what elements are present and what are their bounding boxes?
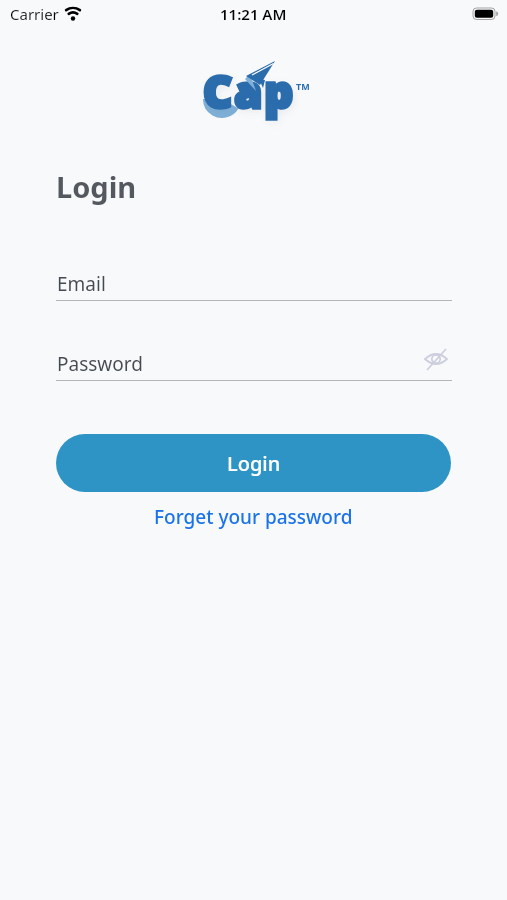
staticText: Forget your password <box>154 504 353 530</box>
staticText: Email <box>57 271 106 297</box>
button[interactable] <box>424 346 450 372</box>
staticText: TM <box>296 80 310 92</box>
staticText: Login <box>56 167 137 206</box>
staticText: Password <box>57 351 143 377</box>
button[interactable]: Email <box>56 270 452 301</box>
staticText: Cap <box>203 60 296 121</box>
staticText: Cap <box>203 60 296 121</box>
staticText: 11:21 AM <box>220 4 287 24</box>
button[interactable]: Forget your password <box>154 504 353 530</box>
staticText: Login <box>227 450 281 477</box>
button[interactable]: Password <box>56 350 452 381</box>
button[interactable]: Login <box>56 434 451 492</box>
staticText: Carrier <box>10 4 59 24</box>
